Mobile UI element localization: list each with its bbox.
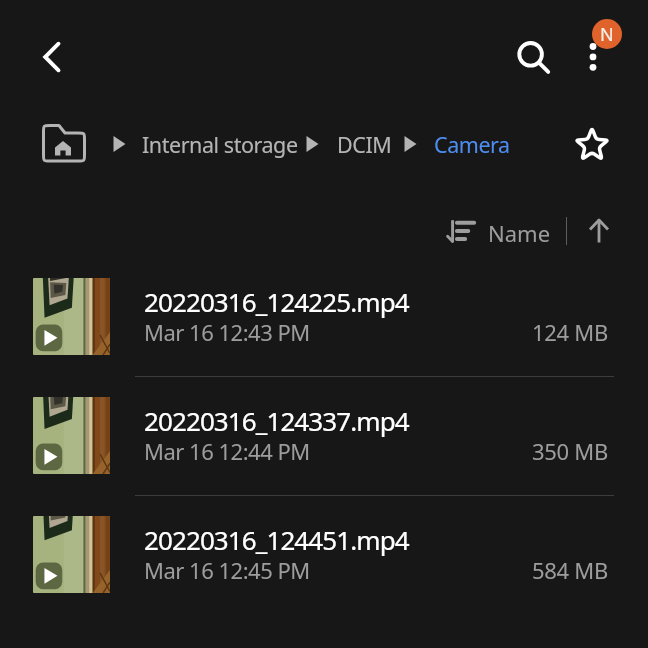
staticText: DCIM — [337, 130, 392, 159]
staticText: 350 MB — [532, 436, 608, 466]
button[interactable]: Search — [506, 30, 556, 80]
staticText: Mar 16 12:45 PM — [144, 555, 310, 585]
button[interactable]: 20220316_124337.mp4 — [0, 378, 648, 497]
button[interactable]: Add to favorites — [570, 123, 614, 167]
button[interactable]: Name — [441, 208, 553, 254]
staticText: 20220316_124337.mp4 — [144, 403, 409, 438]
button[interactable]: 20220316_124225.mp4 — [0, 259, 648, 378]
staticText: 584 MB — [532, 555, 608, 585]
button[interactable]: Sort ascending — [581, 213, 617, 249]
staticText: 124 MB — [532, 317, 608, 347]
staticText: Camera — [434, 130, 510, 159]
staticText: Name — [488, 218, 551, 248]
staticText: Mar 16 12:44 PM — [144, 436, 310, 466]
button[interactable]: Home — [41, 122, 87, 168]
staticText: 20220316_124451.mp4 — [144, 522, 409, 557]
button[interactable]: Camera — [434, 130, 510, 159]
button[interactable]: More options — [570, 23, 616, 69]
staticText: N — [600, 22, 614, 47]
button[interactable]: DCIM — [337, 130, 392, 159]
staticText: Mar 16 12:43 PM — [144, 317, 310, 347]
button[interactable]: 20220316_124451.mp4 — [0, 497, 648, 616]
button[interactable]: Internal storage — [142, 130, 298, 159]
staticText: 20220316_124225.mp4 — [144, 284, 409, 319]
button[interactable]: Account — [592, 19, 622, 49]
button[interactable]: Back — [25, 33, 73, 81]
staticText: Internal storage — [142, 130, 298, 159]
